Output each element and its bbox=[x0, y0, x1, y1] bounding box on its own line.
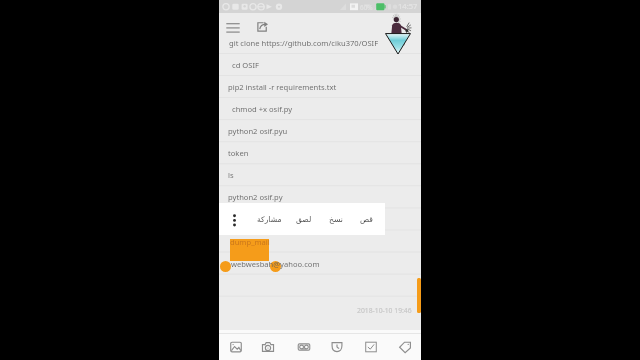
staticText: pip2 install -r requirements.txt bbox=[228, 82, 337, 92]
staticText: cd OSIF bbox=[232, 60, 259, 70]
staticText: python2 osif.pyu bbox=[228, 126, 288, 136]
button[interactable]: More options bbox=[227, 203, 241, 235]
button[interactable]: Share bbox=[252, 16, 273, 37]
staticText: webwesbah@yahoo.com bbox=[231, 259, 320, 269]
staticText: 60% bbox=[360, 3, 373, 12]
button[interactable]: Selection end handle bbox=[270, 261, 281, 272]
button[interactable]: مشاركة bbox=[255, 203, 283, 235]
staticText: ls bbox=[228, 170, 234, 180]
button[interactable]: Reminder bbox=[323, 334, 351, 360]
button[interactable]: قص bbox=[357, 203, 375, 235]
staticText: chmod +x osif.py bbox=[232, 104, 293, 114]
button[interactable]: لصق bbox=[293, 203, 315, 235]
staticText: لصق bbox=[296, 215, 312, 224]
button[interactable]: Selection start handle bbox=[220, 261, 231, 272]
staticText: 2018-10-10 19:46 bbox=[357, 306, 412, 315]
button[interactable]: Tag bbox=[391, 334, 419, 360]
button[interactable]: Image bbox=[222, 334, 250, 360]
button[interactable]: Menu bbox=[222, 17, 243, 38]
staticText: token bbox=[228, 148, 249, 158]
staticText: git clone https://github.com/ciku370/OSI… bbox=[229, 38, 379, 48]
button[interactable]: Camera bbox=[254, 334, 282, 360]
button[interactable]: Recording bbox=[290, 334, 318, 360]
staticText: قص bbox=[360, 215, 373, 224]
staticText: مشاركة bbox=[257, 215, 282, 224]
button[interactable]: Checklist bbox=[357, 334, 385, 360]
staticText: dump_mail bbox=[230, 237, 270, 247]
staticText: python2 osif.py bbox=[228, 192, 283, 202]
staticText: نسخ bbox=[329, 215, 343, 224]
button[interactable]: نسخ bbox=[325, 203, 347, 235]
staticText: 14:57 bbox=[398, 1, 418, 11]
